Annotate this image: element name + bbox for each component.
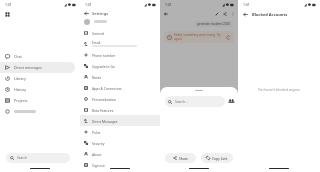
staticText: 1:41 [243,2,250,7]
staticText: Blocked Accounts [252,12,288,17]
button[interactable]: Menu [5,12,10,17]
button[interactable]: Back [84,11,89,16]
staticText: About [92,152,102,156]
button[interactable]: Phone number [80,49,160,60]
staticText: Beta Features [92,108,114,112]
staticText: Phone number [92,53,116,57]
staticText: Chat [14,54,22,59]
button[interactable]: Sign out [80,159,160,170]
staticText: Search [17,156,28,160]
staticText: Share [179,156,188,160]
staticText: Apps & Connectors [92,86,122,90]
staticText: Personalization [92,97,116,101]
button[interactable]: Back [164,12,168,16]
staticText: Sign out [92,163,105,167]
button[interactable]: Library [0,73,75,84]
staticText: Security [92,141,105,145]
staticText: History [14,87,27,92]
button[interactable]: Search [6,153,70,163]
staticText: Notes [92,75,102,79]
button[interactable]: Notes [80,71,160,82]
button[interactable]: About [80,148,160,159]
button[interactable]: Edit [215,12,219,16]
button[interactable]: Share [223,12,227,16]
button[interactable]: History [0,84,75,95]
staticText: 1:41 [165,2,172,7]
staticText: Direct messages [14,65,42,70]
staticText: 1:41 [85,2,92,7]
staticText: generate student 2026 [197,22,230,26]
staticText: Projects [14,98,28,103]
button[interactable]: Back [243,12,248,17]
button[interactable]: Copy Link [201,153,233,163]
button[interactable]: General [80,27,160,38]
staticText: Search... [175,100,188,104]
staticText: General [92,31,105,35]
button[interactable]: Direct Messages [80,115,160,126]
button[interactable]: Personalization [80,93,160,104]
staticText: Email [92,40,101,44]
button[interactable]: Apps & Connectors [80,82,160,93]
button[interactable]: Pulse [80,126,160,137]
staticText: Upgrade to Go [92,64,115,68]
staticText: Copy Link [212,156,228,160]
staticText: Direct Messages [92,119,118,123]
button[interactable]: Share [165,153,196,163]
button[interactable]: People [228,98,235,105]
button[interactable]: Projects [0,95,75,106]
staticText: 1:41 [5,2,12,7]
button[interactable]: Chat [0,51,75,62]
button[interactable] [80,16,160,27]
button[interactable]: Search... [165,96,225,107]
button[interactable]: Email [80,38,160,49]
button[interactable]: Upgrade to Go [80,60,160,71]
staticText: Library [14,76,26,81]
button[interactable]: Beta Features [80,104,160,115]
staticText: You haven't blocked anyone [258,88,300,92]
staticText: Pulse [92,130,101,134]
staticText: Failed, something went wrong. Try again. [174,33,226,41]
button[interactable]: Direct messages [0,62,75,73]
button[interactable]: More [231,12,235,16]
button[interactable] [0,106,75,117]
staticText: Settings [92,11,109,17]
button[interactable]: Security [80,137,160,148]
